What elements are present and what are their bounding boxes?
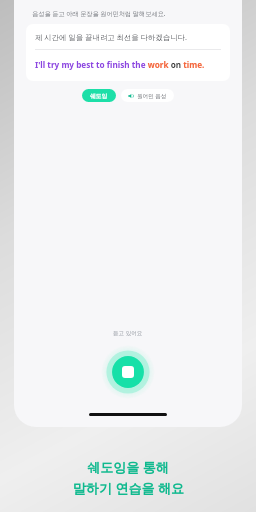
button[interactable]: 원어민 음성 (121, 89, 174, 102)
staticText: 음성을 듣고 아래 문장을 원어민처럼 말해보세요. (32, 9, 166, 17)
button[interactable]: 제 시간에 일을 끝내려고 최선을 다하겠습니다. (26, 24, 230, 81)
staticText: 쉐도잉 (90, 92, 108, 99)
button[interactable]: Stop recording (101, 345, 155, 399)
staticText: 듣고 있어요 (113, 329, 143, 337)
staticText: 쉐도잉을 통해 (87, 458, 169, 476)
button[interactable]: 쉐도잉 (82, 89, 116, 102)
staticText: 제 시간에 일을 끝내려고 최선을 다하겠습니다. (35, 32, 188, 42)
staticText: 원어민 음성 (137, 92, 167, 100)
staticText: I'll try my best to finish the work on t… (35, 59, 205, 70)
staticText: 말하기 연습을 해요 (73, 479, 184, 497)
